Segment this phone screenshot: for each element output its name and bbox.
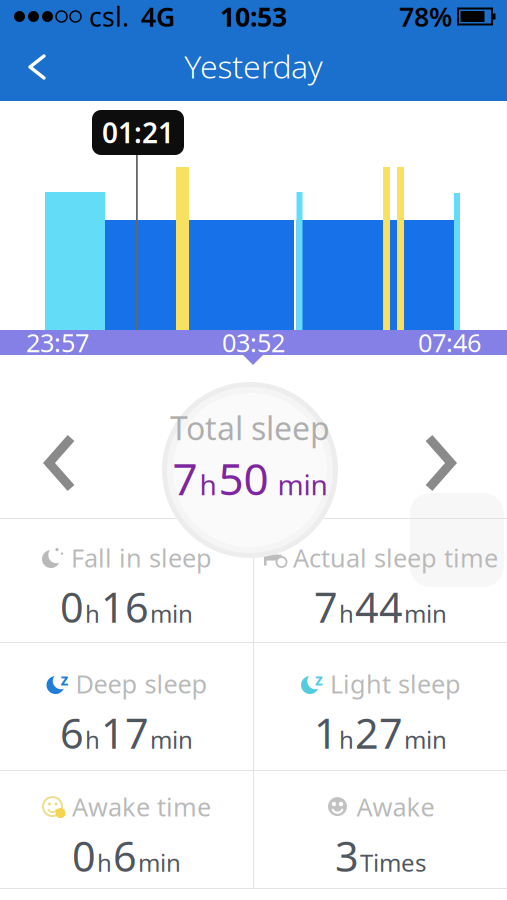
button[interactable]: Back <box>0 37 48 97</box>
staticText: 4G <box>141 0 175 34</box>
staticText: min <box>150 724 193 755</box>
staticText: Awake time <box>72 790 211 823</box>
staticText: min <box>270 466 327 503</box>
staticText: min <box>138 847 181 878</box>
staticText: 16 <box>101 579 149 634</box>
staticText: Times <box>360 847 426 878</box>
staticText: 1 <box>314 705 338 760</box>
staticText: 0 <box>60 579 84 634</box>
staticText: h <box>339 598 354 629</box>
staticText: 44 <box>355 579 403 634</box>
staticText: min <box>404 724 447 755</box>
staticText: Yesterday <box>184 45 323 87</box>
staticText: 07:46 <box>418 326 481 359</box>
staticText: 01:21 <box>102 114 174 151</box>
staticText: h <box>199 466 216 503</box>
staticText: csl. <box>89 0 129 34</box>
staticText: min <box>404 598 447 629</box>
staticText: Fall in sleep <box>71 541 212 574</box>
staticText: Total sleep <box>170 406 330 449</box>
staticText: Actual sleep time <box>293 541 498 574</box>
staticText: h <box>97 847 112 878</box>
staticText: 7 <box>314 579 338 634</box>
staticText: 23:57 <box>26 326 89 359</box>
staticText: 3 <box>335 828 359 883</box>
staticText: z <box>315 669 323 690</box>
staticText: Deep sleep <box>75 667 207 700</box>
staticText: Light sleep <box>330 667 461 700</box>
staticText: 03:52 <box>222 326 285 359</box>
staticText: 6 <box>113 828 137 883</box>
button[interactable]: Next day <box>413 423 467 503</box>
staticText: 10:53 <box>220 0 287 34</box>
staticText: 50 <box>218 449 268 507</box>
staticText: 6 <box>60 705 84 760</box>
staticText: h <box>85 724 100 755</box>
staticText: 17 <box>101 705 149 760</box>
staticText: 7 <box>172 449 197 507</box>
staticText: Awake <box>356 790 434 823</box>
staticText: 27 <box>355 705 403 760</box>
staticText: 0 <box>72 828 96 883</box>
staticText: h <box>339 724 354 755</box>
staticText: z <box>60 669 68 690</box>
staticText: 78% <box>399 0 452 34</box>
button[interactable]: Previous day <box>33 423 87 503</box>
staticText: min <box>150 598 193 629</box>
staticText: h <box>85 598 100 629</box>
